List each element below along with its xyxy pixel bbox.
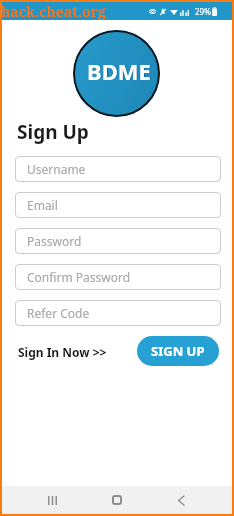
staticText: SIGN UP — [151, 342, 205, 360]
staticText: Password — [27, 233, 82, 249]
button[interactable]: Refer Code — [15, 300, 221, 326]
staticText: Confirm Password — [27, 269, 131, 285]
staticText: Sign Up — [17, 119, 89, 145]
staticText: Email — [27, 197, 58, 213]
button[interactable]: Username — [15, 156, 221, 182]
button[interactable]: Sign In Now >> — [17, 341, 108, 363]
staticText: BDME — [88, 56, 152, 86]
button[interactable]: Back — [169, 488, 193, 512]
button[interactable]: Password — [15, 228, 221, 254]
staticText: 29% — [195, 6, 211, 17]
staticText: Sign In Now >> — [18, 344, 107, 360]
button[interactable]: Email — [15, 192, 221, 218]
button[interactable]: Recents — [40, 488, 64, 512]
button[interactable]: Confirm Password — [15, 264, 221, 290]
staticText: hack.cheat.org — [1, 2, 106, 21]
staticText: Username — [27, 161, 86, 177]
button[interactable]: Home — [105, 488, 129, 512]
staticText: BDME — [87, 56, 151, 86]
button[interactable]: SIGN UP — [137, 336, 219, 366]
staticText: Refer Code — [27, 305, 90, 321]
